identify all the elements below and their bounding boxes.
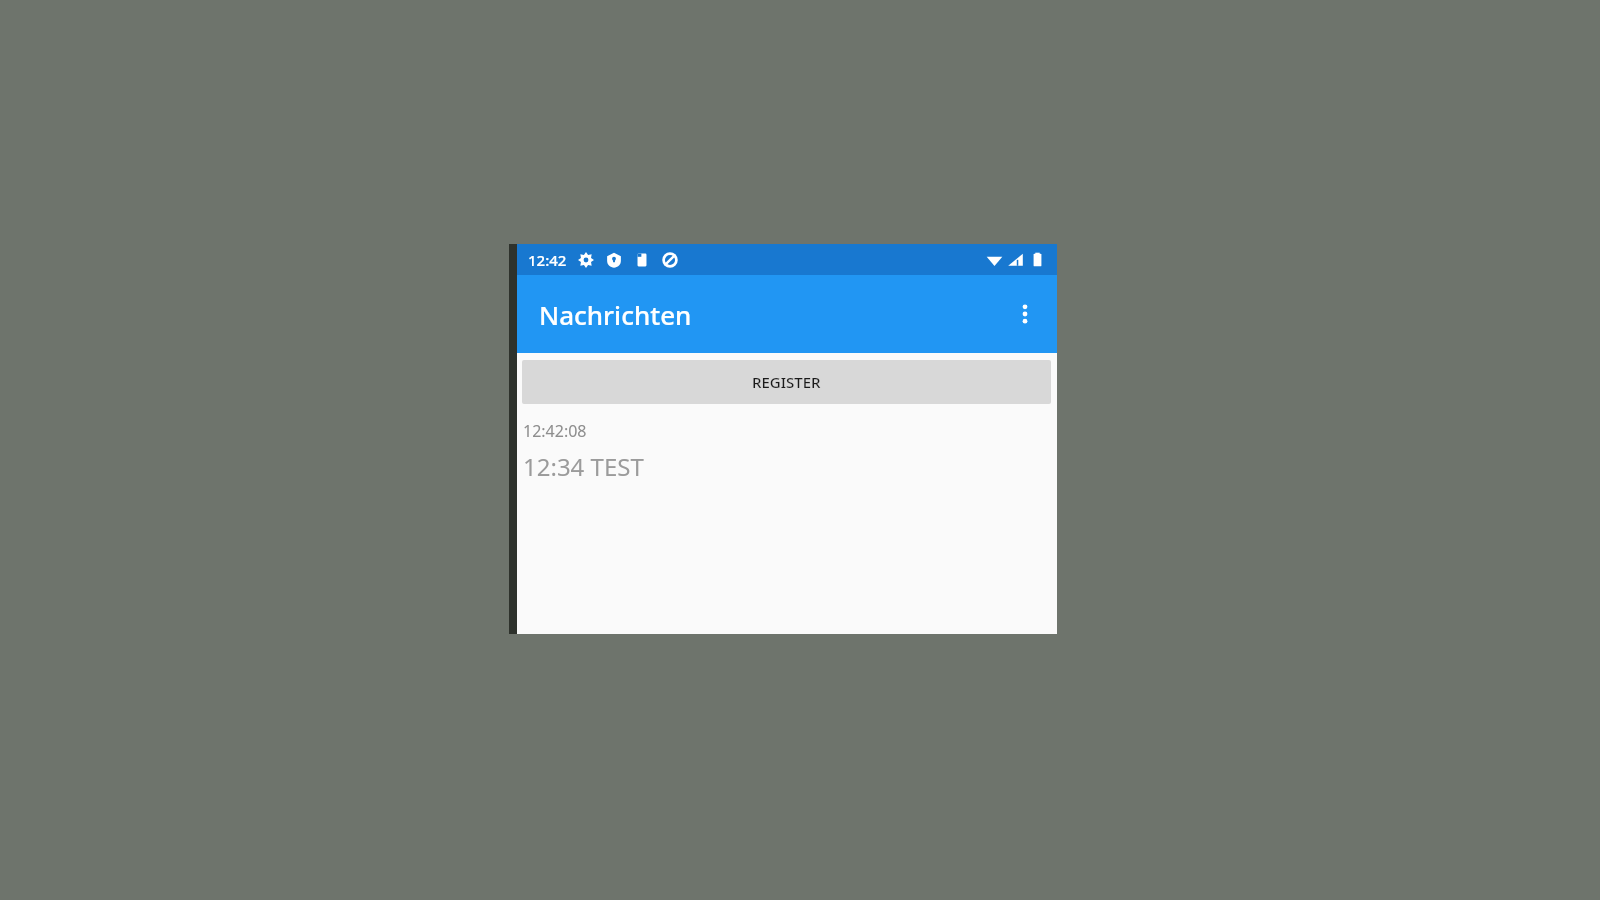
staticText: REGISTER <box>752 372 821 392</box>
staticText: 12:42:08 <box>523 420 587 442</box>
button[interactable]: More options <box>1002 291 1048 337</box>
button[interactable]: REGISTER <box>522 360 1051 404</box>
staticText: Nachrichten <box>539 297 692 332</box>
staticText: 12:42 <box>528 250 567 270</box>
staticText: 12:34 TEST <box>523 450 644 483</box>
